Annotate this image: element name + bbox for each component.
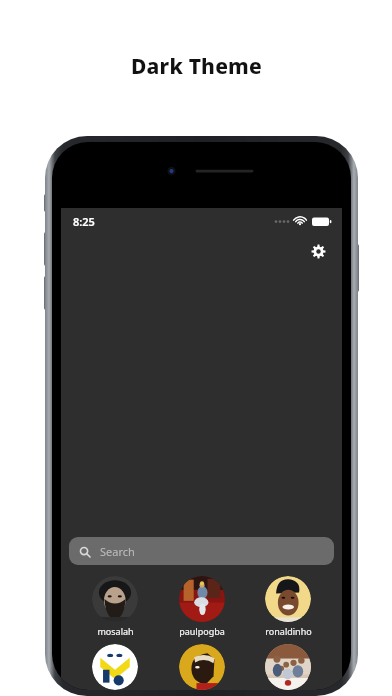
staticText: ronaldinho [265, 625, 312, 637]
button[interactable]: mosalah [78, 576, 152, 637]
button[interactable]: Contact Family [251, 644, 325, 690]
button[interactable]: Contact M [78, 644, 152, 690]
staticText: Search [100, 544, 135, 559]
button[interactable]: ronaldinho [251, 576, 325, 637]
staticText: 8:25 [73, 214, 95, 229]
button[interactable]: Search [69, 537, 334, 565]
button[interactable]: paulpogba [165, 576, 239, 637]
staticText: Dark Theme [131, 52, 262, 81]
staticText: mosalah [97, 625, 134, 637]
staticText: paulpogba [179, 625, 225, 637]
button[interactable]: Settings [305, 238, 331, 264]
button[interactable]: Contact Pogba [165, 644, 239, 690]
